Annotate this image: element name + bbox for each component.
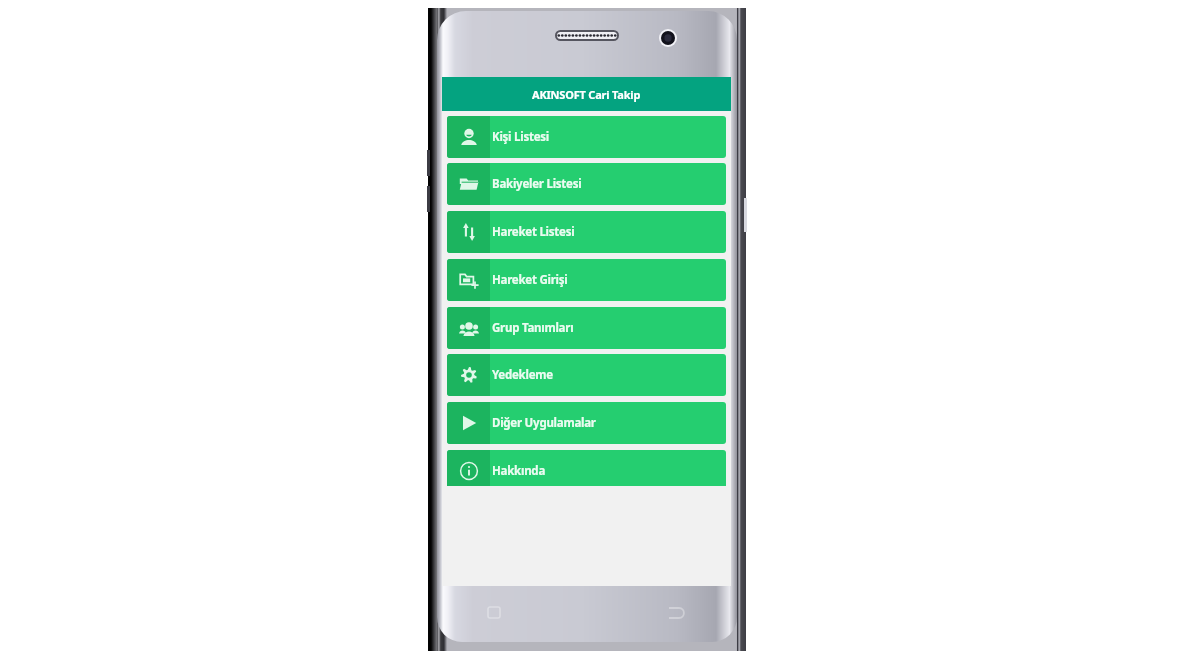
button[interactable]: Hakkında bbox=[447, 450, 726, 486]
staticText: Bakiyeler Listesi bbox=[492, 176, 582, 192]
button[interactable]: Hareket Girişi bbox=[447, 259, 726, 301]
button[interactable]: AKINSOFT Cari Takip bbox=[442, 77, 731, 111]
button[interactable]: Diğer Uygulamalar bbox=[447, 402, 726, 444]
button[interactable]: Hareket Listesi bbox=[447, 211, 726, 253]
staticText: Hakkında bbox=[492, 463, 546, 479]
staticText: AKINSOFT Cari Takip bbox=[532, 87, 641, 102]
button[interactable]: Bakiyeler Listesi bbox=[447, 163, 726, 205]
staticText: Hareket Girişi bbox=[492, 272, 568, 288]
staticText: Kişi Listesi bbox=[492, 129, 549, 145]
staticText: Hareket Listesi bbox=[492, 224, 575, 240]
button[interactable]: Kişi Listesi bbox=[447, 116, 726, 158]
staticText: Yedekleme bbox=[492, 367, 553, 383]
staticText: Diğer Uygulamalar bbox=[492, 415, 596, 431]
button[interactable]: Yedekleme bbox=[447, 354, 726, 396]
button[interactable]: Grup Tanımları bbox=[447, 307, 726, 349]
staticText: Grup Tanımları bbox=[492, 320, 574, 336]
